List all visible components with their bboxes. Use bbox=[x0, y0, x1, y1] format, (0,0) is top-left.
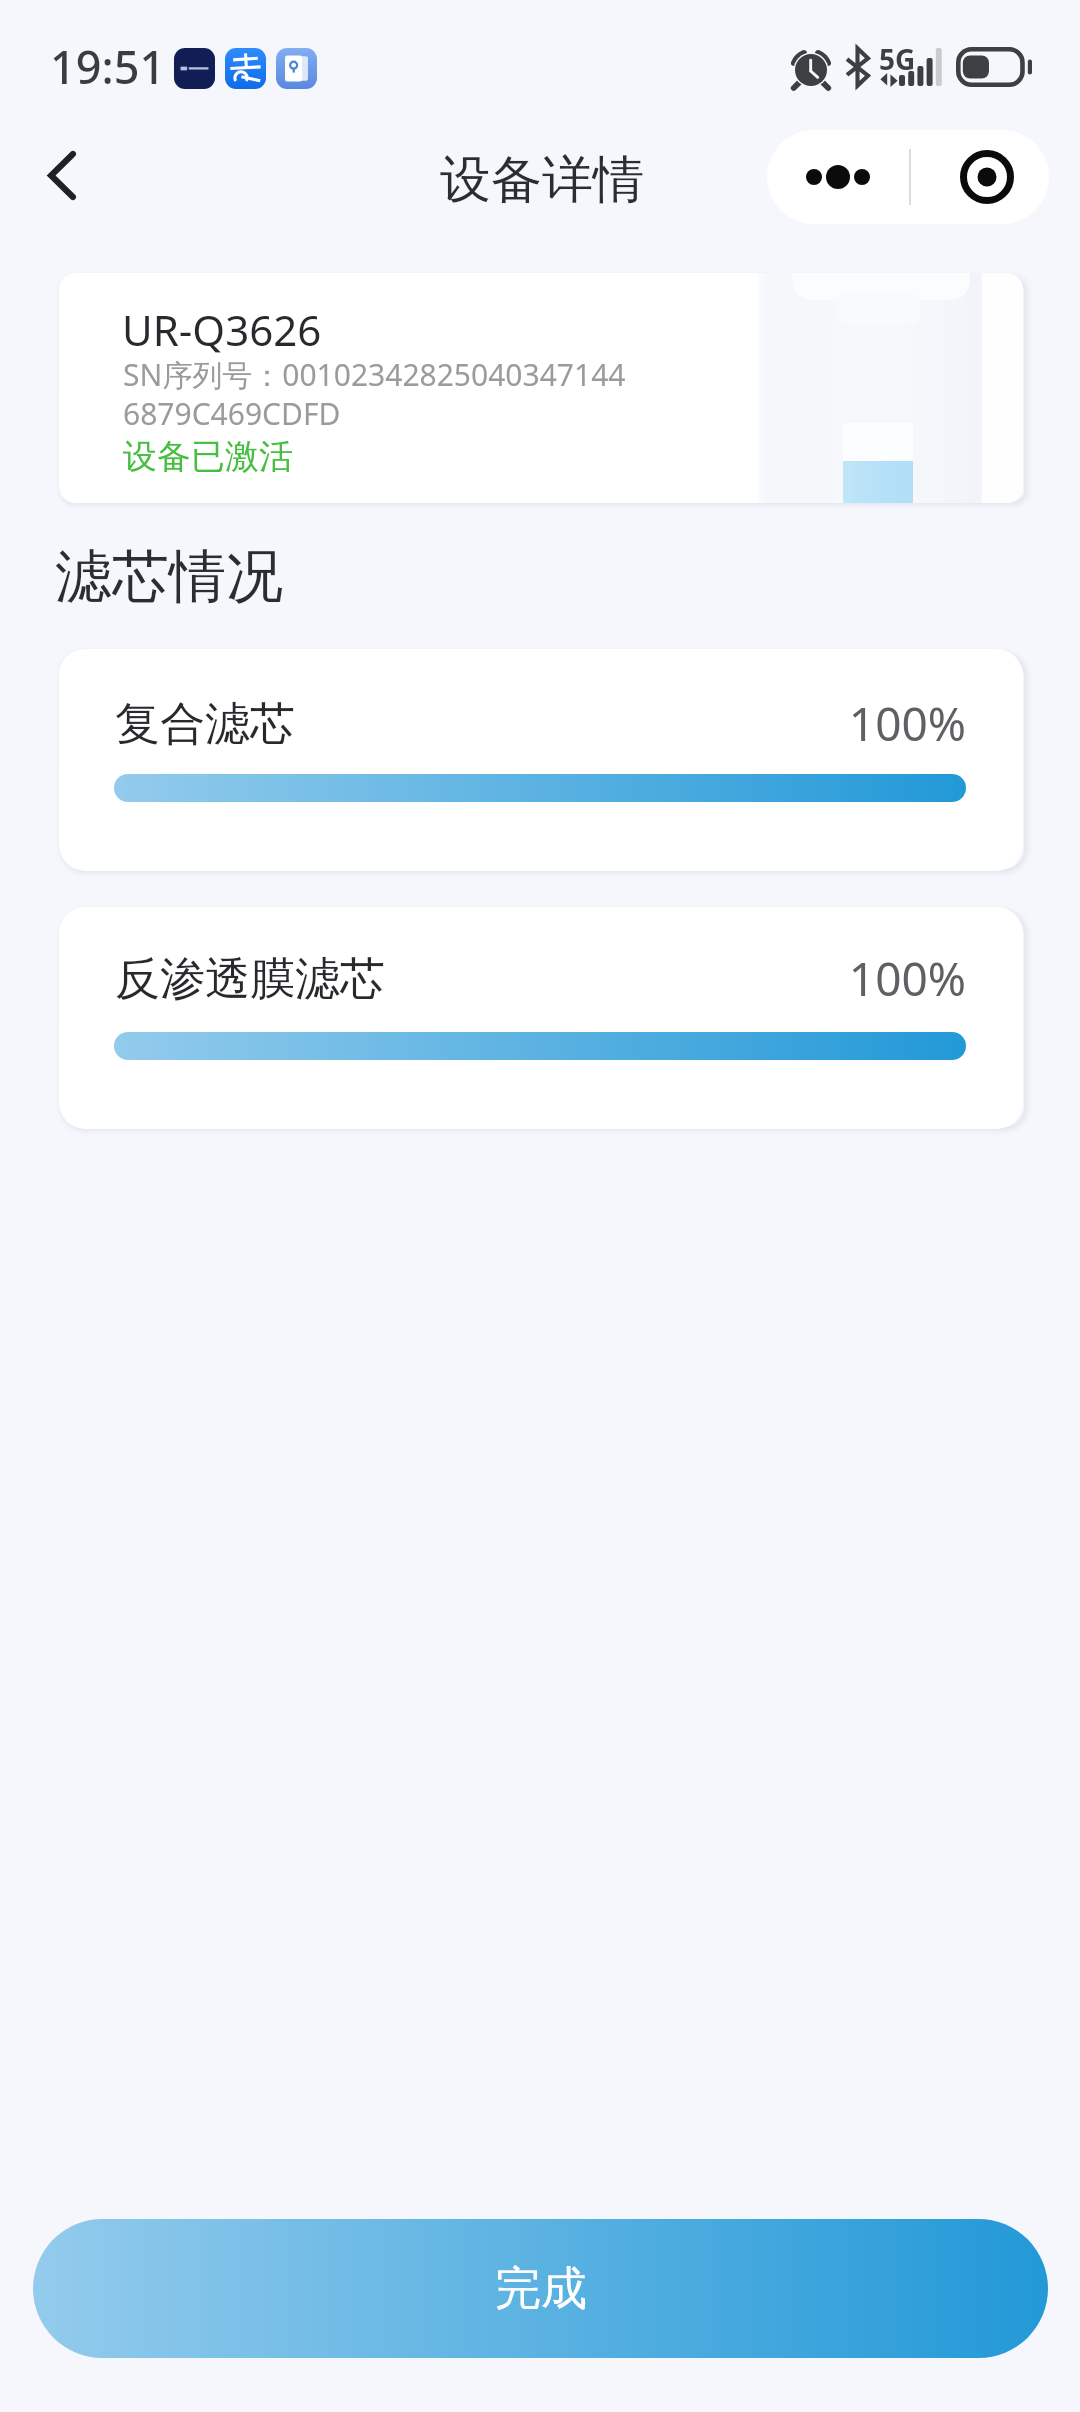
button[interactable]: UR-Q3626 bbox=[59, 273, 1023, 503]
staticText: 完成 bbox=[495, 2260, 587, 2318]
staticText: 滤芯情况 bbox=[55, 541, 283, 613]
button[interactable]: 反渗透膜滤芯 bbox=[59, 907, 1023, 1129]
button[interactable]: 复合滤芯 bbox=[59, 649, 1023, 871]
staticText: UR-Q3626 bbox=[122, 301, 322, 358]
staticText: 100% bbox=[798, 947, 966, 1010]
button[interactable]: 完成 bbox=[33, 2219, 1048, 2358]
staticText: 设备已激活 bbox=[123, 435, 293, 478]
button[interactable]: Back bbox=[7, 120, 117, 230]
button[interactable]: Close mini program bbox=[911, 130, 1049, 224]
staticText: 反渗透膜滤芯 bbox=[115, 951, 385, 1008]
staticText: SN序列号：00102342825040347144 bbox=[123, 354, 626, 395]
staticText: 5G bbox=[879, 40, 916, 78]
staticText: 复合滤芯 bbox=[115, 696, 295, 753]
staticText: 设备详情 bbox=[2, 148, 1080, 212]
staticText: 100% bbox=[798, 692, 966, 755]
staticText: 19:51 bbox=[50, 36, 166, 97]
button[interactable]: More options bbox=[767, 130, 909, 224]
staticText: 6879C469CDFD bbox=[123, 393, 341, 434]
